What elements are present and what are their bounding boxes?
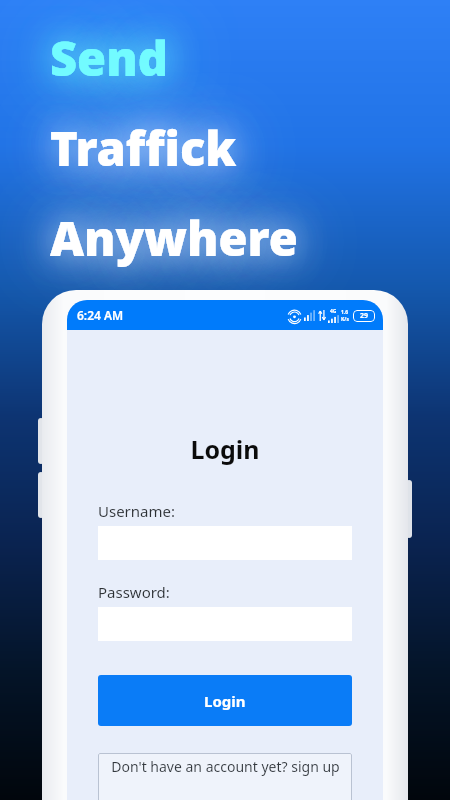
staticText: 4G: [330, 308, 337, 315]
staticText: Send: [50, 26, 168, 90]
staticText: Anywhere: [50, 206, 298, 270]
button[interactable]: Don't have an account yet? sign up: [98, 753, 352, 800]
staticText: 29: [360, 311, 369, 321]
staticText: Password:: [98, 582, 170, 602]
staticText: 6:24 AM: [77, 307, 124, 323]
staticText: Send: [50, 26, 168, 90]
button[interactable]: Login: [98, 675, 352, 726]
staticText: 1.6: [341, 309, 349, 316]
staticText: Traffick: [50, 116, 237, 180]
staticText: Login: [204, 691, 246, 711]
staticText: Login: [98, 432, 352, 466]
staticText: Traffick: [50, 116, 237, 180]
staticText: Username:: [98, 501, 175, 521]
staticText: Anywhere: [50, 206, 298, 270]
staticText: K/s: [341, 316, 349, 323]
staticText: Don't have an account yet? sign up: [111, 757, 340, 776]
